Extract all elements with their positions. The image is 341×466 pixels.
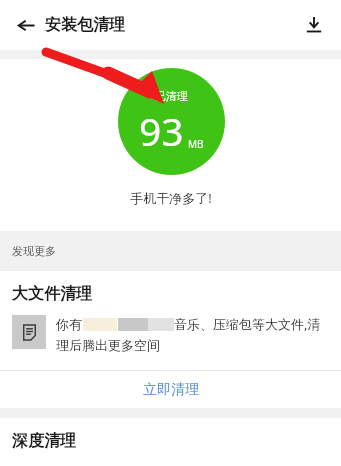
staticText: 93: [139, 104, 184, 157]
staticText: 已清理: [155, 89, 188, 103]
staticText: 音乐、压缩包等大文件,清: [174, 315, 321, 333]
staticText: 深度清理: [12, 431, 76, 451]
staticText: 立即清理: [143, 381, 199, 399]
staticText: 安装包清理: [45, 15, 125, 35]
staticText: 你有: [56, 316, 82, 332]
staticText: MB: [188, 137, 204, 151]
button[interactable]: Download: [295, 6, 333, 44]
staticText: 大文件清理: [12, 284, 92, 304]
button[interactable]: Back: [6, 5, 46, 45]
staticText: 理后腾出更多空间: [56, 337, 160, 353]
button[interactable]: 立即清理: [0, 371, 341, 408]
staticText: 手机干净多了!: [130, 189, 212, 207]
staticText: 发现更多: [12, 244, 56, 258]
